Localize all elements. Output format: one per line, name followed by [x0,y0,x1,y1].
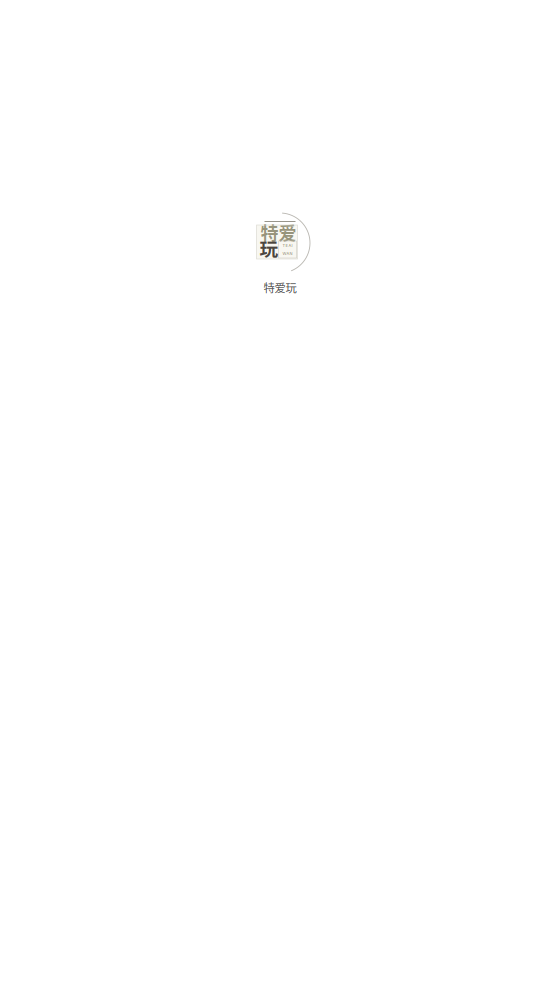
staticText: TE AI [282,243,292,248]
staticText: 特爱 [260,219,296,245]
staticText: 玩 [259,234,278,261]
staticText: 特爱玩 [263,279,296,295]
staticText: WAN [282,251,292,256]
